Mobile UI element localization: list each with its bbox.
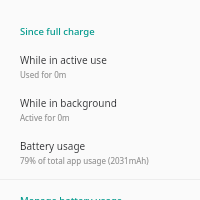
- staticText: Active for 0m: [20, 112, 70, 123]
- staticText: Used for 0m: [20, 69, 67, 80]
- button[interactable]: Battery usage: [0, 139, 200, 166]
- staticText: 79% of total app usage (2031mAh): [20, 155, 149, 166]
- staticText: Battery usage: [20, 139, 86, 153]
- staticText: While in active use: [20, 53, 107, 67]
- staticText: Since full charge: [20, 25, 95, 38]
- button[interactable]: While in active use: [0, 53, 200, 80]
- staticText: While in background: [20, 96, 117, 110]
- staticText: Manage battery usage: [20, 194, 123, 200]
- button[interactable]: While in background: [0, 96, 200, 123]
